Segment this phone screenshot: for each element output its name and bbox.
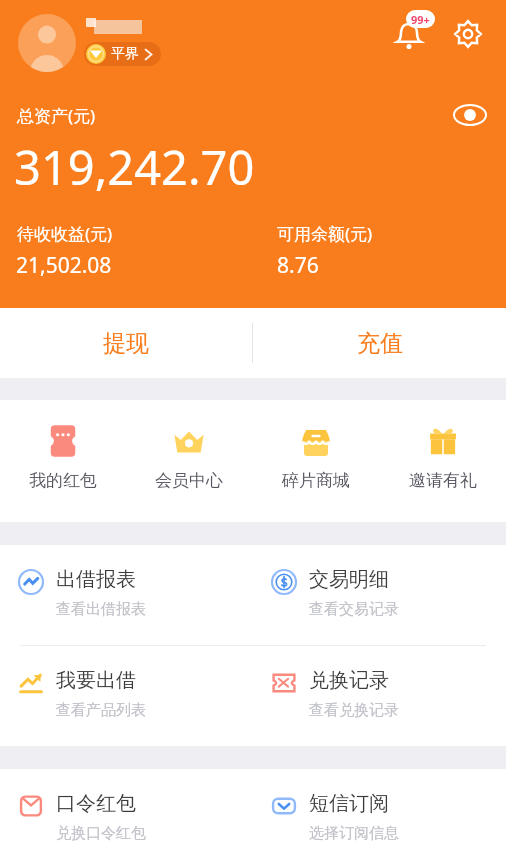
staticText: 可用余额(元) (277, 222, 373, 245)
button[interactable]: 我要出借 (0, 646, 253, 746)
staticText: 邀请有礼 (409, 470, 477, 491)
staticText: 提现 (103, 329, 149, 358)
staticText: 会员中心 (155, 470, 223, 491)
staticText: 8.76 (277, 251, 319, 280)
staticText: 短信订阅 (309, 791, 389, 816)
staticText: 我要出借 (56, 668, 136, 693)
staticText: 查看产品列表 (56, 701, 146, 720)
button[interactable]: 交易明细 (253, 545, 506, 645)
staticText: 兑换记录 (309, 668, 389, 693)
button[interactable]: 提现 (0, 308, 252, 378)
staticText: 口令红包 (56, 791, 136, 816)
staticText: 出借报表 (56, 567, 136, 592)
staticText: 99+ (411, 12, 430, 27)
staticText: 总资产(元) (17, 104, 96, 127)
button[interactable]: Notifications (390, 10, 436, 56)
button[interactable]: Settings (452, 18, 484, 50)
button[interactable]: 我的红包 (0, 400, 126, 522)
button[interactable]: 平界 (84, 42, 161, 66)
staticText: 充值 (357, 329, 403, 358)
staticText: 选择订阅信息 (309, 824, 399, 843)
staticText: 319,242.70 (14, 135, 255, 199)
button[interactable]: 口令红包 (0, 769, 253, 855)
staticText: 平界 (111, 45, 139, 63)
staticText: 查看兑换记录 (309, 701, 399, 720)
button[interactable]: 碎片商城 (252, 400, 379, 522)
staticText: 待收收益(元) (17, 222, 113, 245)
button[interactable]: 短信订阅 (253, 769, 506, 855)
staticText: 查看交易记录 (309, 600, 399, 619)
button[interactable]: 出借报表 (0, 545, 253, 645)
staticText: 碎片商城 (282, 470, 350, 491)
button[interactable]: 充值 (253, 308, 506, 378)
staticText: 交易明细 (309, 567, 389, 592)
staticText: 21,502.08 (16, 251, 112, 280)
button[interactable]: 邀请有礼 (379, 400, 506, 522)
staticText: 我的红包 (29, 470, 97, 491)
button[interactable]: Profile avatar (18, 14, 76, 72)
staticText: 兑换口令红包 (56, 824, 146, 843)
button[interactable]: Toggle balance visibility (448, 98, 492, 132)
button[interactable]: 兑换记录 (253, 646, 506, 746)
button[interactable]: 会员中心 (126, 400, 252, 522)
staticText: 查看出借报表 (56, 600, 146, 619)
